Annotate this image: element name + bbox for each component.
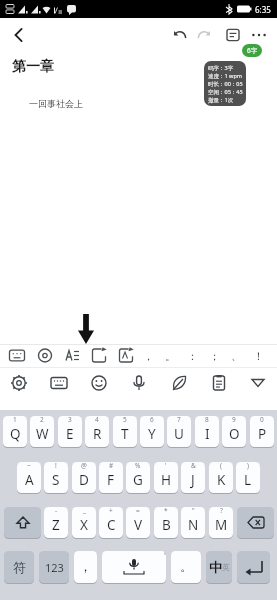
- staticText: 第一章: [12, 58, 54, 76]
- staticText: D: [79, 471, 89, 489]
- button[interactable]: 。: [171, 551, 201, 583]
- button[interactable]: Y: [140, 416, 164, 447]
- button[interactable]: E: [58, 416, 82, 447]
- staticText: ；: [209, 349, 220, 363]
- staticText: 6:35: [255, 4, 271, 15]
- button[interactable]: ：: [181, 346, 203, 366]
- button[interactable]: D: [72, 462, 96, 493]
- staticText: 4: [95, 416, 99, 424]
- staticText: =: [136, 507, 140, 515]
- button[interactable]: #: [102, 551, 166, 583]
- staticText: G: [133, 471, 143, 489]
- button[interactable]: 、: [225, 346, 247, 366]
- staticText: C: [107, 516, 116, 534]
- button[interactable]: 。: [159, 346, 181, 366]
- button[interactable]: B: [154, 507, 178, 538]
- staticText: 英: [222, 562, 230, 572]
- button[interactable]: [237, 367, 277, 399]
- button[interactable]: [237, 551, 270, 583]
- staticText: 5: [123, 416, 127, 424]
- button[interactable]: [170, 25, 190, 45]
- staticText: #: [164, 551, 166, 557]
- staticText: P: [258, 425, 267, 443]
- staticText: 6字: [247, 46, 258, 55]
- staticText: W: [36, 425, 49, 443]
- staticText: ): [247, 462, 249, 470]
- button[interactable]: [4, 507, 41, 538]
- staticText: F: [107, 471, 115, 489]
- staticText: &: [191, 462, 196, 470]
- button[interactable]: ，: [74, 551, 97, 583]
- button[interactable]: J: [181, 462, 205, 493]
- button[interactable]: 符: [4, 551, 34, 583]
- staticText: O: [229, 425, 240, 443]
- staticText: 符: [13, 559, 26, 575]
- staticText: 2: [40, 416, 44, 424]
- staticText: B: [162, 516, 171, 534]
- staticText: E: [66, 425, 74, 443]
- staticText: 0: [260, 416, 264, 424]
- staticText: ：: [187, 349, 198, 363]
- button[interactable]: L: [236, 462, 260, 493]
- staticText: @: [81, 462, 87, 470]
- button[interactable]: Q: [3, 416, 27, 447]
- button[interactable]: ，: [137, 346, 159, 366]
- button[interactable]: A: [17, 462, 41, 493]
- button[interactable]: ！: [247, 346, 269, 366]
- button[interactable]: N: [181, 507, 205, 538]
- button[interactable]: X: [72, 507, 96, 538]
- staticText: *: [164, 507, 168, 515]
- button[interactable]: [197, 367, 237, 399]
- button[interactable]: [78, 367, 117, 399]
- staticText: L: [244, 471, 252, 489]
- button[interactable]: Z: [44, 507, 68, 538]
- button[interactable]: C: [99, 507, 123, 538]
- staticText: 7: [177, 416, 181, 424]
- button[interactable]: [157, 367, 197, 399]
- button[interactable]: O: [222, 416, 246, 447]
- button[interactable]: [237, 507, 274, 538]
- staticText: _: [83, 507, 86, 515]
- button[interactable]: [249, 25, 269, 45]
- staticText: A: [25, 471, 34, 489]
- staticText: 9: [232, 416, 236, 424]
- button[interactable]: V: [126, 507, 150, 538]
- button[interactable]: P: [250, 416, 274, 447]
- button[interactable]: [223, 25, 243, 45]
- staticText: J: [191, 471, 195, 489]
- staticText: 6: [150, 416, 154, 424]
- staticText: T: [121, 425, 129, 443]
- button[interactable]: U: [167, 416, 191, 447]
- staticText: K: [217, 471, 226, 489]
- button[interactable]: H: [154, 462, 178, 493]
- button[interactable]: M: [209, 507, 233, 538]
- button[interactable]: K: [209, 462, 233, 493]
- staticText: M: [215, 516, 228, 534]
- staticText: Q: [10, 425, 21, 443]
- staticText: %: [135, 462, 141, 470]
- button[interactable]: [39, 367, 78, 399]
- button[interactable]: [117, 367, 157, 399]
- button[interactable]: 123: [39, 551, 69, 583]
- staticText: 。: [165, 349, 176, 363]
- button[interactable]: S: [44, 462, 68, 493]
- button[interactable]: T: [113, 416, 137, 447]
- button[interactable]: R: [85, 416, 109, 447]
- button[interactable]: W: [30, 416, 54, 447]
- button[interactable]: [0, 367, 39, 399]
- staticText: I: [205, 425, 210, 443]
- staticText: -: [55, 507, 58, 515]
- button[interactable]: [194, 25, 214, 45]
- staticText: 1: [13, 416, 17, 424]
- button[interactable]: [8, 24, 30, 46]
- button[interactable]: I: [195, 416, 219, 447]
- button[interactable]: 中: [206, 551, 232, 583]
- button[interactable]: ；: [203, 346, 225, 366]
- staticText: Y: [148, 425, 156, 443]
- button[interactable]: 6字: [242, 44, 262, 57]
- staticText: 8: [205, 416, 209, 424]
- button[interactable]: F: [99, 462, 123, 493]
- staticText: 中: [209, 559, 222, 575]
- staticText: S: [52, 471, 60, 489]
- button[interactable]: G: [126, 462, 150, 493]
